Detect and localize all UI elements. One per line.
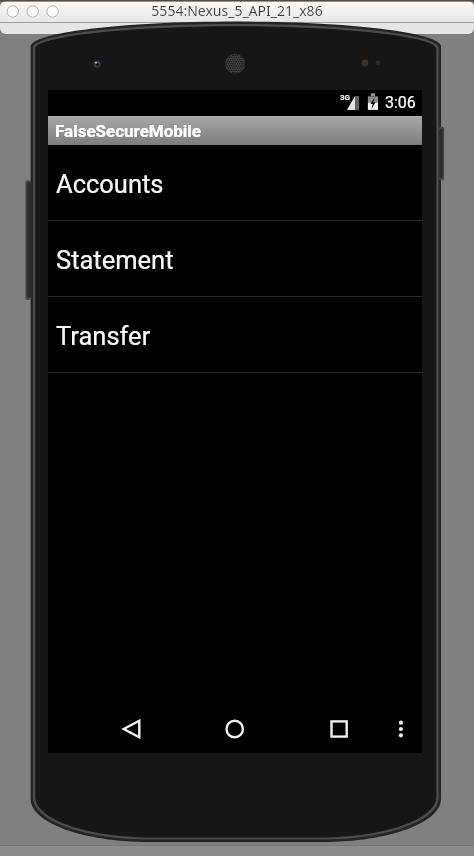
staticText: Accounts bbox=[56, 169, 164, 199]
staticText: FalseSecureMobile bbox=[55, 121, 202, 141]
staticText: 3G bbox=[340, 93, 351, 102]
button[interactable]: Back bbox=[105, 705, 157, 753]
button[interactable]: Recent apps bbox=[313, 705, 365, 753]
staticText: Statement bbox=[56, 245, 174, 275]
button[interactable]: Accounts bbox=[48, 145, 422, 220]
button[interactable]: Home bbox=[209, 705, 261, 753]
button[interactable]: More options bbox=[383, 705, 419, 753]
button[interactable]: Statement bbox=[48, 221, 422, 296]
button[interactable]: Transfer bbox=[48, 297, 422, 372]
button[interactable]: FalseSecureMobile bbox=[48, 116, 422, 145]
staticText: 5554:Nexus_5_API_21_x86 bbox=[151, 1, 323, 20]
staticText: 3:06 bbox=[385, 93, 416, 112]
staticText: Transfer bbox=[56, 321, 151, 351]
